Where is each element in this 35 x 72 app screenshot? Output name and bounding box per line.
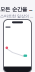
staticText: 스마트한 일상의 시작: [0, 13, 35, 19]
staticText: 모든 순간을 더 쉽게: [0, 5, 35, 13]
